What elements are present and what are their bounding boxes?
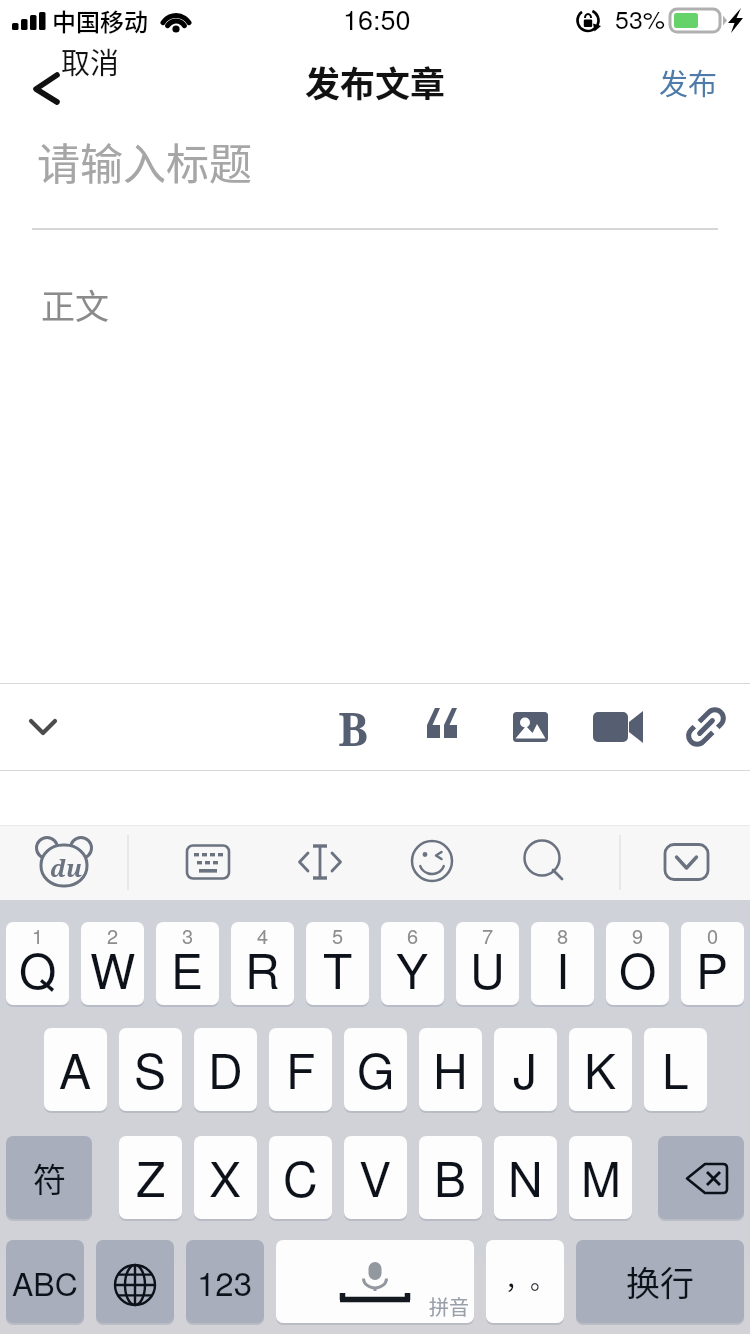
button[interactable]: 空格 拼音: [276, 1240, 474, 1323]
button[interactable]: 7: [456, 922, 519, 1005]
button[interactable]: J: [494, 1028, 557, 1111]
button[interactable]: 引用: [412, 684, 472, 770]
staticText: 取消: [61, 40, 120, 82]
button[interactable]: L: [644, 1028, 707, 1111]
button[interactable]: 4: [231, 922, 294, 1005]
button[interactable]: 5: [306, 922, 369, 1005]
button[interactable]: 换行: [576, 1240, 744, 1323]
staticText: Z: [136, 1142, 166, 1211]
button[interactable]: 收起键盘: [648, 825, 724, 900]
staticText: T: [323, 934, 353, 1003]
button[interactable]: 123: [186, 1240, 264, 1323]
staticText: 1: [32, 922, 44, 950]
staticText: B: [338, 698, 369, 759]
staticText: U: [470, 934, 505, 1003]
button[interactable]: 删除: [658, 1136, 744, 1219]
staticText: D: [208, 1034, 243, 1103]
staticText: 发布: [659, 61, 718, 103]
staticText: R: [245, 934, 280, 1003]
button[interactable]: A: [44, 1028, 107, 1111]
button[interactable]: 取消: [16, 42, 146, 122]
staticText: 123: [197, 1258, 253, 1305]
button[interactable]: 百度输入法: [26, 825, 102, 900]
staticText: S: [134, 1034, 167, 1103]
staticText: Y: [396, 934, 429, 1003]
button[interactable]: 移动光标: [282, 825, 358, 900]
button[interactable]: 收起工具栏: [14, 684, 72, 770]
button[interactable]: 3: [156, 922, 219, 1005]
staticText: C: [283, 1142, 318, 1211]
button[interactable]: V: [344, 1136, 407, 1219]
button[interactable]: M: [569, 1136, 632, 1219]
button[interactable]: 切换输入语言: [96, 1240, 174, 1323]
staticText: A: [59, 1034, 92, 1103]
button[interactable]: D: [194, 1028, 257, 1111]
staticText: 换行: [626, 1257, 694, 1306]
button[interactable]: 0: [681, 922, 744, 1005]
staticText: L: [662, 1034, 689, 1103]
staticText: H: [433, 1034, 468, 1103]
staticText: 5: [332, 922, 344, 950]
staticText: W: [90, 934, 136, 1003]
button[interactable]: C: [269, 1136, 332, 1219]
staticText: 53%: [615, 0, 666, 36]
staticText: K: [584, 1034, 617, 1103]
staticText: 16:50: [343, 0, 411, 38]
staticText: I: [556, 934, 570, 1003]
button[interactable]: 1: [6, 922, 69, 1005]
button[interactable]: G: [344, 1028, 407, 1111]
staticText: 0: [707, 922, 719, 950]
staticText: 发布文章: [305, 56, 446, 107]
staticText: G: [357, 1034, 395, 1103]
staticText: 中国移动: [52, 3, 148, 38]
button[interactable]: S: [119, 1028, 182, 1111]
staticText: 6: [407, 922, 419, 950]
button[interactable]: 插入视频: [588, 684, 648, 770]
staticText: 拼音: [429, 1292, 469, 1321]
button[interactable]: H: [419, 1028, 482, 1111]
button[interactable]: F: [269, 1028, 332, 1111]
button[interactable]: 发布: [627, 47, 750, 117]
button[interactable]: 搜索: [506, 825, 582, 900]
staticText: O: [619, 934, 657, 1003]
staticText: 8: [557, 922, 569, 950]
button[interactable]: 表情: [394, 825, 470, 900]
staticText: E: [171, 934, 204, 1003]
staticText: 7: [482, 922, 494, 950]
staticText: P: [696, 934, 729, 1003]
button[interactable]: 8: [531, 922, 594, 1005]
button[interactable]: ABC: [6, 1240, 84, 1323]
staticText: 9: [632, 922, 644, 950]
button[interactable]: N: [494, 1136, 557, 1219]
staticText: 4: [257, 922, 269, 950]
staticText: Q: [19, 934, 57, 1003]
staticText: M: [581, 1142, 621, 1211]
staticText: X: [209, 1142, 242, 1211]
button[interactable]: 键盘设置: [170, 825, 246, 900]
staticText: 请输入标题: [37, 130, 252, 192]
button[interactable]: 2: [81, 922, 144, 1005]
staticText: 2: [107, 922, 119, 950]
button[interactable]: 插入链接: [675, 684, 735, 770]
staticText: N: [508, 1142, 543, 1211]
button[interactable]: ，。: [486, 1240, 564, 1323]
button[interactable]: X: [194, 1136, 257, 1219]
button[interactable]: 加粗: [323, 684, 383, 770]
staticText: F: [286, 1034, 316, 1103]
staticText: du: [50, 851, 83, 884]
staticText: ABC: [12, 1259, 78, 1305]
button[interactable]: Z: [119, 1136, 182, 1219]
staticText: ，。: [505, 1260, 556, 1296]
staticText: 3: [182, 922, 194, 950]
button[interactable]: 符: [6, 1136, 92, 1219]
button[interactable]: 6: [381, 922, 444, 1005]
staticText: V: [359, 1142, 392, 1211]
button[interactable]: B: [419, 1136, 482, 1219]
button[interactable]: 9: [606, 922, 669, 1005]
staticText: B: [434, 1142, 467, 1211]
button[interactable]: 插入图片: [502, 684, 562, 770]
staticText: 符: [33, 1154, 66, 1202]
button[interactable]: K: [569, 1028, 632, 1111]
staticText: 正文: [41, 280, 109, 329]
staticText: J: [513, 1034, 538, 1103]
